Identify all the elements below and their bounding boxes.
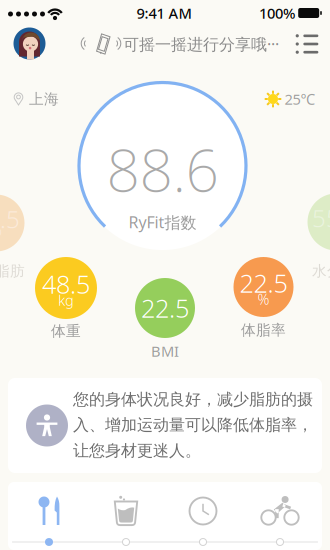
staticText: 入、增加运动量可以降低体脂率，	[73, 415, 313, 435]
staticText: 让您身材更迷人。	[73, 441, 201, 460]
staticText: 上海	[29, 90, 59, 108]
staticText: kg	[58, 290, 74, 310]
staticText: 体重	[51, 322, 81, 340]
button[interactable]: History	[189, 497, 216, 524]
staticText: 25℃	[284, 89, 315, 109]
button[interactable]: 22.5	[135, 278, 195, 338]
staticText: %	[0, 220, 2, 240]
staticText: 55.1	[312, 202, 330, 234]
button[interactable]: Exercise	[260, 495, 299, 526]
staticText: RyFit指数	[128, 211, 196, 233]
button[interactable]: 48.5	[35, 257, 97, 319]
button[interactable]: 22.5	[233, 257, 293, 317]
staticText: 48.5	[42, 267, 90, 301]
staticText: 100%	[259, 3, 295, 23]
staticText: BMI	[151, 341, 179, 361]
button[interactable]: Menu	[295, 34, 318, 53]
staticText: 水分	[312, 262, 330, 280]
staticText: 可摇一摇进行分享哦···	[123, 33, 279, 55]
button[interactable]: 可摇一摇进行分享哦···	[80, 28, 280, 60]
button[interactable]: 25℃	[264, 89, 315, 109]
staticText: 88.6	[106, 130, 218, 208]
staticText: %	[257, 289, 269, 309]
staticText: 您的身体状况良好，减少脂肪的摄	[73, 389, 313, 409]
staticText: 22.5	[0, 203, 20, 235]
button[interactable]: Water	[113, 495, 138, 526]
staticText: 22.5	[239, 266, 287, 300]
staticText: 内脏脂肪	[0, 262, 25, 280]
button[interactable]: Profile	[13, 27, 45, 59]
button[interactable]: 上海	[13, 90, 59, 108]
staticText: 9:41 AM	[136, 3, 191, 23]
staticText: 22.5	[141, 291, 189, 325]
staticText: 体脂率	[241, 321, 286, 339]
button[interactable]: Diet	[37, 496, 61, 526]
